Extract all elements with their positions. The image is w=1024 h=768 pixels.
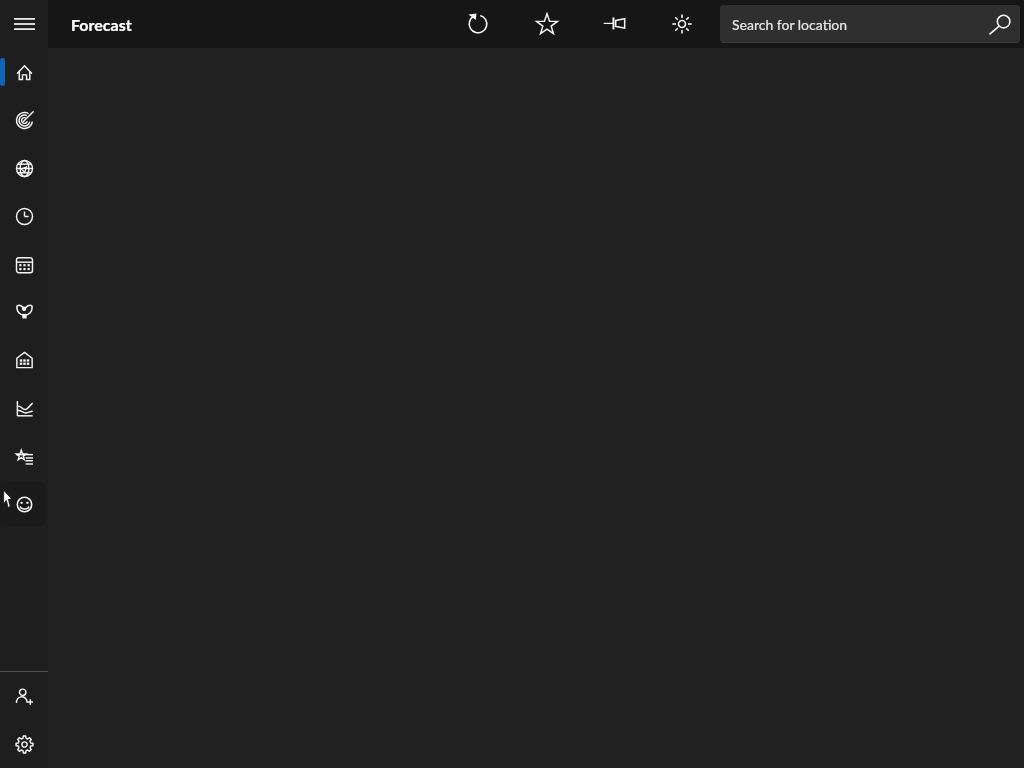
button[interactable]: Add to favourites [527,4,567,44]
button[interactable]: Radar [0,96,48,144]
button[interactable]: Home [0,48,48,96]
button[interactable]: Search for location [720,5,1020,43]
button[interactable]: Sign in [0,672,48,720]
button[interactable]: Monthly forecast [0,240,48,288]
staticText: Forecast [71,15,132,34]
button[interactable]: Hourly forecast [0,192,48,240]
button[interactable]: Air quality [0,336,48,384]
button[interactable]: Pollen [0,288,48,336]
button[interactable]: Refresh [458,4,498,44]
button[interactable]: Pin [594,4,634,44]
staticText: Search for location [732,16,847,33]
button[interactable]: Favourites [0,432,48,480]
button[interactable]: Send feedback [0,480,48,528]
button[interactable]: Change theme [662,4,702,44]
button[interactable]: Navigation menu [0,0,48,48]
button[interactable]: Settings [0,720,48,768]
button[interactable]: Historical weather [0,384,48,432]
button[interactable]: Maps [0,144,48,192]
